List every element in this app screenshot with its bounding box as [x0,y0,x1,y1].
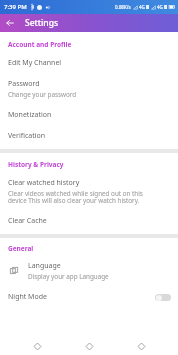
button[interactable]: Verification [0,124,178,145]
button[interactable]: Recent apps [134,339,148,353]
staticText: 7:39 PM [4,3,27,11]
staticText: Password [8,79,40,89]
staticText: Monetization [8,110,52,120]
button[interactable]: Home [82,339,96,353]
staticText: Display your app Language [28,272,109,281]
staticText: Clear Cache [8,216,47,226]
staticText: Language [28,261,61,271]
button[interactable]: Language [0,255,178,285]
staticText: Verification [8,131,46,141]
button[interactable]: Password [0,72,178,103]
staticText: History & Privacy [8,160,178,169]
staticText: Change your password [8,90,77,99]
button[interactable]: Night Mode [0,285,178,302]
button[interactable]: Back [30,339,44,353]
button[interactable]: Clear Cache [0,209,178,230]
staticText: 4G [157,4,163,10]
button[interactable]: Back [3,16,17,30]
staticText: Account and Profile [8,40,178,49]
staticText: Clear watched history [8,178,80,188]
staticText: Settings [25,17,59,29]
staticText: Edit My Channel [8,58,62,68]
staticText: Night Mode [8,292,155,302]
staticText: General [8,244,178,253]
staticText: Clear videos watched while signed out on… [8,189,143,205]
button[interactable]: Monetization [0,103,178,124]
button[interactable]: Clear watched history [0,171,178,209]
staticText: 4G [139,4,145,10]
staticText: 0.08K/s [115,4,131,10]
button[interactable]: Edit My Channel [0,51,178,72]
